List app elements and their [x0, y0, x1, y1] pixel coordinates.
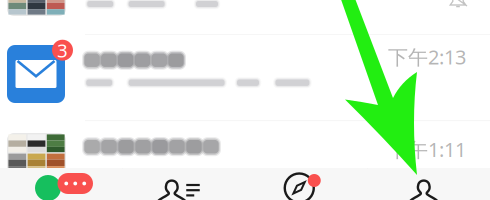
staticText: 下午1:11	[388, 136, 466, 162]
button[interactable]: Contacts	[122, 168, 245, 200]
button[interactable]: Discover	[245, 168, 367, 200]
button[interactable]	[0, 0, 490, 34]
button[interactable]: Me	[367, 168, 490, 200]
button[interactable]: 下午1:11	[0, 121, 490, 168]
staticText: 下午2:13	[388, 43, 466, 70]
button[interactable]: Chats	[0, 168, 122, 200]
staticText: 3	[57, 38, 68, 63]
button[interactable]: 3	[0, 35, 490, 120]
